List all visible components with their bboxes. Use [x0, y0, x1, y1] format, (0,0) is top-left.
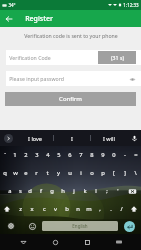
staticText: Register [25, 14, 53, 24]
button[interactable]: (31 s) [98, 51, 136, 64]
staticText: 0 [112, 151, 116, 159]
button[interactable]: ' [112, 182, 123, 200]
button[interactable]: Back [0, 10, 17, 27]
staticText: v [54, 205, 57, 213]
staticText: 1:12:33 [123, 2, 139, 8]
button[interactable]: Backspace [123, 182, 141, 200]
staticText: i [80, 169, 82, 177]
staticText: [ [113, 169, 115, 177]
staticText: \ [134, 169, 137, 177]
button[interactable]: w [10, 164, 20, 182]
staticText: 9 [101, 151, 105, 159]
button[interactable]: i [75, 164, 86, 182]
staticText: f [40, 187, 42, 195]
button[interactable]: s [15, 182, 25, 200]
button[interactable]: Recent apps [79, 234, 95, 250]
button[interactable]: m [83, 200, 94, 218]
button[interactable]: z [14, 200, 26, 218]
button[interactable]: I love [16, 130, 53, 146]
staticText: 1 [13, 151, 17, 159]
button[interactable]: v [50, 200, 61, 218]
button[interactable]: ; [101, 182, 112, 200]
button[interactable]: , [94, 200, 105, 218]
button[interactable]: . [105, 200, 116, 218]
button[interactable]: More suggestions [0, 130, 16, 146]
button[interactable]: b [61, 200, 72, 218]
staticText: c [43, 205, 46, 213]
button[interactable]: 6 [64, 146, 75, 164]
button[interactable]: Confirm [5, 92, 136, 106]
button[interactable]: n [72, 200, 83, 218]
staticText: . [110, 205, 112, 213]
button[interactable]: d [25, 182, 35, 200]
button[interactable]: 2 [20, 146, 31, 164]
button[interactable]: 1 [10, 146, 20, 164]
button[interactable]: 9 [97, 146, 108, 164]
button[interactable]: y [53, 164, 64, 182]
button[interactable]: a [5, 182, 15, 200]
button[interactable]: t [42, 164, 53, 182]
button[interactable]: 5 [53, 146, 64, 164]
staticText: 8 [90, 151, 94, 159]
staticText: (31 s) [111, 54, 124, 61]
button[interactable]: 3 [31, 146, 42, 164]
button[interactable]: Enter [118, 218, 141, 234]
staticText: Confirm [59, 95, 82, 103]
staticText: o [90, 169, 94, 177]
button[interactable]: f [35, 182, 46, 200]
button[interactable]: Emoji [22, 218, 42, 234]
button[interactable]: \ [130, 164, 141, 182]
button[interactable]: Show password [127, 74, 137, 84]
staticText: ` [4, 151, 6, 159]
button[interactable]: Home [47, 234, 63, 250]
button[interactable]: u [64, 164, 75, 182]
staticText: - [124, 151, 126, 159]
button[interactable]: - [119, 146, 130, 164]
button[interactable]: / [116, 200, 127, 218]
button[interactable]: Settings [0, 218, 22, 234]
button[interactable]: p [97, 164, 108, 182]
staticText: Verification Code [9, 54, 51, 61]
button[interactable]: 7 [75, 146, 86, 164]
button[interactable]: o [86, 164, 97, 182]
button[interactable]: I will [91, 130, 127, 146]
button[interactable]: 4 [42, 146, 53, 164]
staticText: 4 [46, 151, 50, 159]
button[interactable]: ` [0, 146, 10, 164]
staticText: l [95, 187, 97, 195]
button[interactable]: Keyboard layout [111, 234, 127, 250]
button[interactable]: l [90, 182, 101, 200]
button[interactable]: e [20, 164, 31, 182]
button[interactable]: q [0, 164, 10, 182]
staticText: p [101, 169, 105, 177]
button[interactable]: c [38, 200, 50, 218]
button[interactable]: Back [15, 234, 31, 250]
button[interactable]: k [79, 182, 90, 200]
staticText: / [120, 205, 123, 213]
staticText: I will [103, 135, 115, 142]
button[interactable]: Voice input [127, 130, 141, 146]
button[interactable]: x [26, 200, 38, 218]
staticText: a [8, 187, 12, 195]
staticText: x [30, 205, 34, 213]
button[interactable]: 8 [86, 146, 97, 164]
button[interactable]: English [42, 221, 118, 231]
button[interactable]: ] [119, 164, 130, 182]
button[interactable]: j [68, 182, 79, 200]
button[interactable]: h [57, 182, 68, 200]
staticText: Verification code is sent to your phone [24, 32, 118, 39]
staticText: n [76, 205, 80, 213]
button[interactable]: [ [108, 164, 119, 182]
button[interactable]: r [31, 164, 42, 182]
button[interactable]: g [46, 182, 57, 200]
staticText: = [134, 151, 138, 159]
button[interactable]: Shift [0, 200, 14, 218]
staticText: , [99, 205, 101, 213]
button[interactable]: 0 [108, 146, 119, 164]
button[interactable]: Shift [127, 200, 141, 218]
staticText: ] [124, 169, 126, 177]
button[interactable]: I [54, 130, 90, 146]
button[interactable]: = [130, 146, 141, 164]
staticText: 34° [8, 2, 16, 8]
staticText: d [28, 187, 32, 195]
